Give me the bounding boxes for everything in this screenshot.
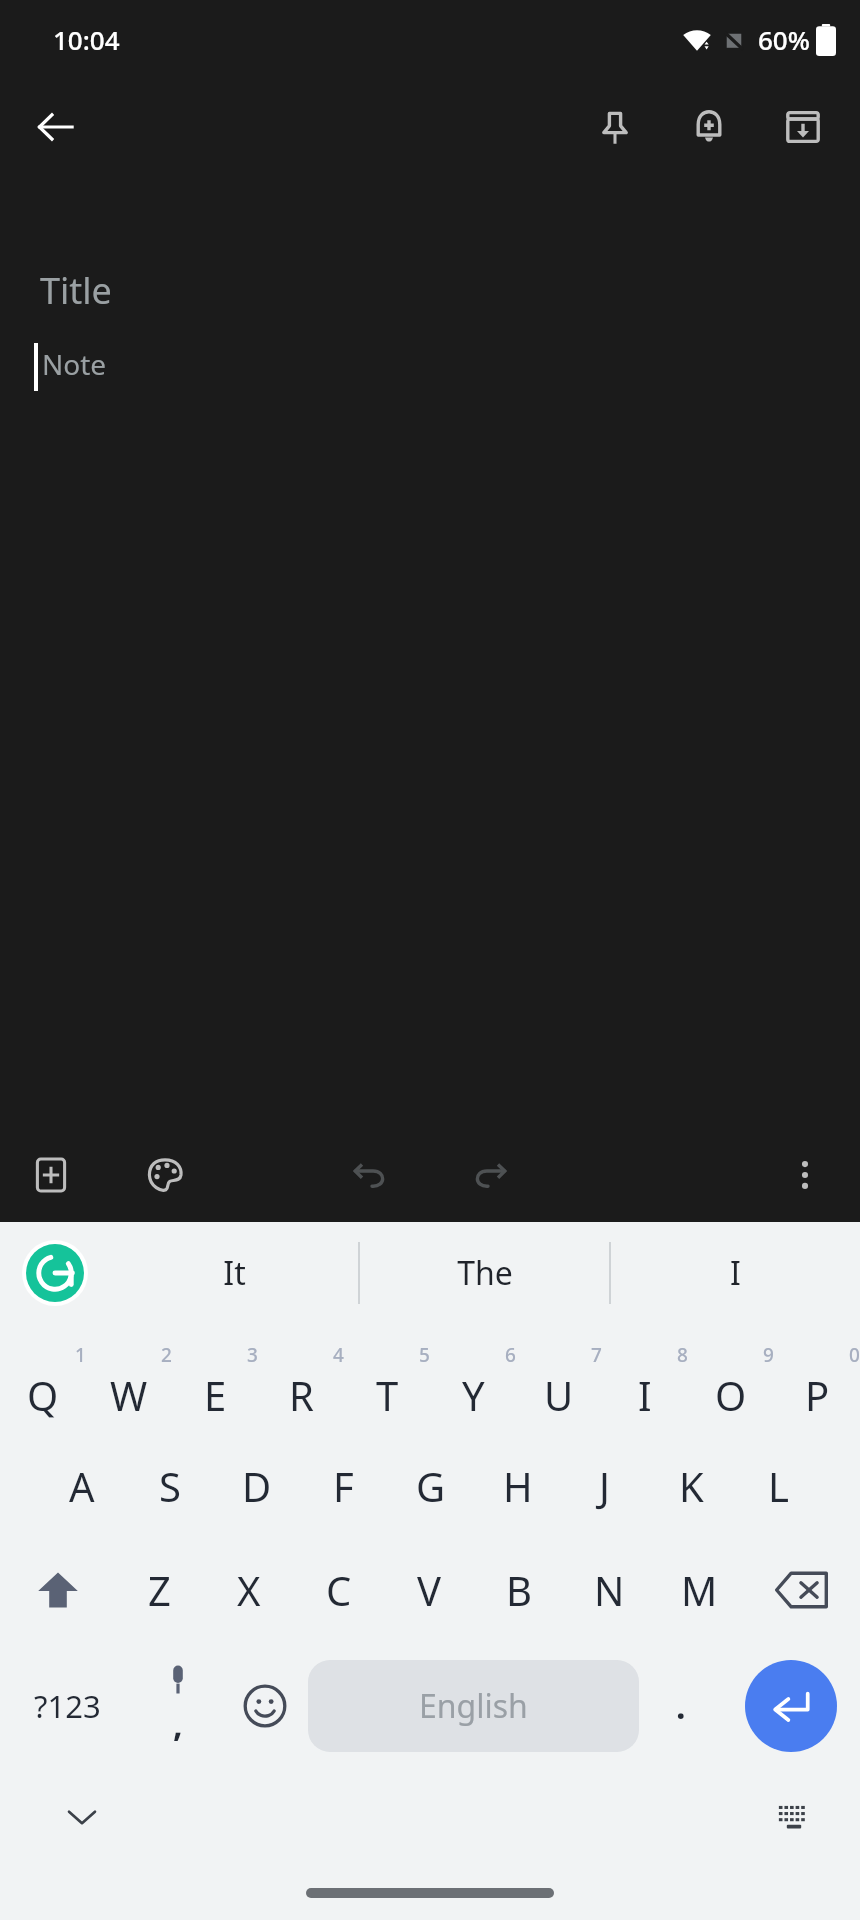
staticText: It	[223, 1251, 246, 1295]
staticText: O	[715, 1368, 747, 1422]
staticText: 9	[763, 1342, 774, 1368]
staticText: X	[237, 1563, 261, 1617]
staticText: Q	[27, 1368, 59, 1422]
staticText: 8	[677, 1342, 688, 1368]
staticText: L	[768, 1459, 789, 1513]
button[interactable]: Hide keyboard	[50, 1784, 114, 1848]
staticText: 4	[333, 1342, 344, 1368]
staticText: S	[159, 1459, 181, 1513]
button[interactable]: 8	[602, 1330, 688, 1434]
button[interactable]: It	[110, 1222, 358, 1324]
staticText: I	[730, 1251, 741, 1295]
button[interactable]: 7	[516, 1330, 602, 1434]
staticText: ?123	[34, 1685, 101, 1727]
staticText: R	[289, 1368, 314, 1422]
staticText: T	[376, 1368, 399, 1422]
button[interactable]: English	[308, 1660, 639, 1752]
button[interactable]: Switch keyboard	[762, 1784, 826, 1848]
button[interactable]: ?123	[0, 1642, 134, 1770]
button[interactable]: B	[474, 1538, 564, 1642]
button[interactable]: G	[387, 1434, 474, 1538]
staticText: The	[457, 1251, 513, 1295]
button[interactable]: Add reminder	[672, 90, 746, 164]
staticText: Y	[462, 1368, 485, 1422]
button[interactable]: X	[204, 1538, 294, 1642]
staticText: F	[333, 1459, 354, 1513]
staticText: 7	[591, 1342, 602, 1368]
button[interactable]: V	[384, 1538, 474, 1642]
staticText: 2	[161, 1342, 172, 1368]
button[interactable]: Voice input and comma	[134, 1642, 221, 1770]
staticText: H	[503, 1459, 533, 1513]
button[interactable]: 2	[86, 1330, 172, 1434]
button[interactable]: The	[360, 1222, 609, 1324]
staticText: 5	[419, 1342, 430, 1368]
button[interactable]: Add attachment	[14, 1138, 88, 1212]
button[interactable]: 9	[688, 1330, 774, 1434]
staticText: M	[681, 1563, 718, 1617]
button[interactable]: C	[294, 1538, 384, 1642]
staticText: English	[419, 1684, 528, 1728]
button[interactable]: Enter	[722, 1642, 860, 1770]
button[interactable]: 5	[344, 1330, 430, 1434]
staticText: 60%	[758, 22, 810, 57]
button[interactable]: 0	[774, 1330, 860, 1434]
staticText: I	[638, 1368, 652, 1422]
staticText: U	[544, 1368, 574, 1422]
button[interactable]: Undo	[333, 1138, 407, 1212]
button[interactable]: Back	[18, 90, 92, 164]
button[interactable]: H	[474, 1434, 561, 1538]
button[interactable]: A	[38, 1434, 126, 1538]
staticText: C	[326, 1563, 352, 1617]
button[interactable]: S	[126, 1434, 213, 1538]
staticText: 3	[247, 1342, 258, 1368]
staticText: K	[679, 1459, 704, 1513]
staticText: Z	[148, 1563, 171, 1617]
button[interactable]: M	[654, 1538, 744, 1642]
button[interactable]: D	[213, 1434, 300, 1538]
button[interactable]: K	[648, 1434, 735, 1538]
staticText: 0	[849, 1342, 860, 1368]
button[interactable]: More options	[768, 1138, 842, 1212]
button[interactable]: 6	[430, 1330, 516, 1434]
staticText: E	[204, 1368, 227, 1422]
staticText: 10:04	[53, 22, 120, 57]
button[interactable]: I	[611, 1222, 860, 1324]
staticText: J	[599, 1459, 610, 1513]
staticText: A	[69, 1459, 95, 1513]
staticText: Note	[42, 345, 107, 383]
button[interactable]: 1	[0, 1330, 86, 1434]
button[interactable]: Archive	[766, 90, 840, 164]
button[interactable]: Pin note	[578, 90, 652, 164]
button[interactable]: L	[735, 1434, 822, 1538]
button[interactable]: Redo	[453, 1138, 527, 1212]
button[interactable]: Change colour	[128, 1138, 202, 1212]
button[interactable]: .	[639, 1642, 722, 1770]
staticText: B	[506, 1563, 532, 1617]
staticText: W	[110, 1368, 148, 1422]
button[interactable]: Shift	[0, 1538, 115, 1642]
staticText: V	[417, 1563, 441, 1617]
staticText: .	[676, 1683, 686, 1729]
button[interactable]: Backspace	[744, 1538, 860, 1642]
button[interactable]: J	[561, 1434, 648, 1538]
button[interactable]: Grammarly	[22, 1240, 88, 1306]
button[interactable]: 3	[172, 1330, 258, 1434]
button[interactable]: Z	[115, 1538, 204, 1642]
button[interactable]: F	[300, 1434, 387, 1538]
button[interactable]: 4	[258, 1330, 344, 1434]
button[interactable]: Emoji	[221, 1642, 308, 1770]
staticText: G	[416, 1459, 446, 1513]
staticText: 6	[505, 1342, 516, 1368]
staticText: 1	[75, 1342, 86, 1368]
staticText: P	[805, 1368, 830, 1422]
button[interactable]: N	[564, 1538, 654, 1642]
staticText: ,	[173, 1701, 183, 1747]
staticText: D	[242, 1459, 272, 1513]
staticText: N	[594, 1563, 625, 1617]
staticText: Title	[40, 266, 112, 315]
